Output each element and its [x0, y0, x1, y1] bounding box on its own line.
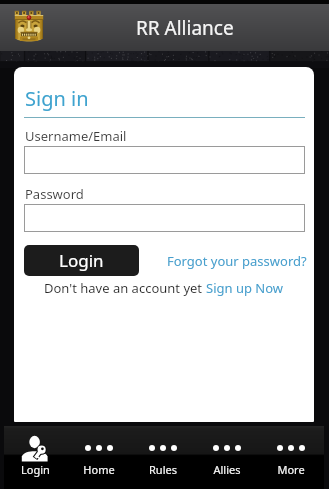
staticText: Login [59, 249, 104, 272]
staticText: Login [21, 462, 50, 477]
button[interactable]: Username or Email field [24, 146, 305, 174]
staticText: Home [83, 462, 115, 477]
button[interactable]: RR Alliance home [13, 10, 45, 42]
button[interactable]: Home [68, 426, 132, 489]
button[interactable]: Password field [24, 204, 305, 232]
staticText: Password [25, 185, 84, 203]
staticText: Sign in [25, 85, 89, 112]
button[interactable]: Forgot your password? [167, 252, 307, 270]
staticText: More [277, 462, 305, 477]
staticText: Username/Email [25, 127, 127, 145]
button[interactable]: Login [24, 245, 139, 276]
button[interactable]: Rules [132, 426, 196, 489]
button[interactable]: Login [4, 426, 68, 489]
staticText: Don't have an account yet [44, 279, 206, 297]
button[interactable]: Sign up Now [206, 279, 284, 297]
staticText: Allies [213, 462, 241, 477]
button[interactable]: Allies [196, 426, 260, 489]
staticText: RR Alliance [136, 15, 234, 41]
button[interactable]: More [260, 426, 324, 489]
staticText: Rules [149, 462, 177, 477]
